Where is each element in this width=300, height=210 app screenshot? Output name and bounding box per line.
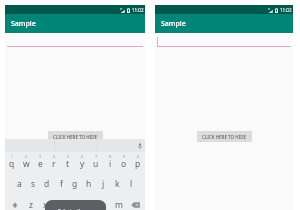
button[interactable]: 6 [75,152,89,173]
staticText: v [71,199,76,210]
staticText: g [72,178,78,190]
staticText: Select a theme [58,208,93,210]
staticText: s [31,178,36,190]
button[interactable]: 3 [33,152,47,173]
button[interactable]: Backspace [126,194,145,210]
button[interactable]: s [26,173,40,194]
staticText: CLICK HERE TO HIDE [53,134,98,140]
button[interactable]: c [52,194,66,210]
button[interactable]: j [96,173,110,194]
button[interactable]: 5 [61,152,75,173]
staticText: x [43,199,48,210]
staticText: CLICK HERE TO HIDE [202,134,247,140]
button[interactable]: Sample [155,14,293,33]
staticText: 5 [67,154,70,159]
button[interactable]: 4 [47,152,61,173]
staticText: d [44,178,50,190]
staticText: Sample [161,19,186,29]
staticText: 0 [137,154,140,159]
button[interactable]: d [40,173,54,194]
staticText: 6 [81,154,84,159]
button[interactable]: Sample [5,14,145,33]
staticText: a [17,178,22,190]
button[interactable]: g [68,173,82,194]
button[interactable]: k [110,173,124,194]
button[interactable]: CLICK HERE TO HIDE [197,131,252,142]
staticText: 1 [11,154,14,159]
staticText: 11:02 [132,7,144,13]
button[interactable]: m [111,194,126,210]
staticText: j [102,178,105,190]
staticText: l [130,178,133,190]
staticText: c [57,199,62,210]
staticText: t [66,158,70,170]
staticText: e [38,158,43,170]
staticText: q [9,158,15,170]
button[interactable]: a [12,173,26,194]
staticText: 11:02 [280,7,292,13]
staticText: 7 [95,154,98,159]
staticText: o [121,158,127,170]
staticText: 4 [53,154,56,159]
button[interactable]: f [54,173,68,194]
staticText: f [60,178,63,190]
button[interactable]: l [124,173,138,194]
button[interactable]: CLICK HERE TO HIDE [48,131,103,142]
button[interactable]: h [82,173,96,194]
staticText: h [86,178,92,190]
staticText: b [86,199,92,210]
button[interactable]: 1 [5,152,19,173]
button[interactable]: 2 [19,152,33,173]
staticText: 2 [25,154,28,159]
staticText: u [93,158,99,170]
button[interactable]: v [66,194,81,210]
button[interactable]: Voice input [138,143,142,149]
button[interactable]: x [38,194,52,210]
staticText: m [115,199,123,210]
staticText: n [101,199,107,210]
staticText: Sample [11,19,36,29]
button[interactable]: Select a theme [45,200,106,210]
button[interactable]: 9 [117,152,131,173]
staticText: z [29,199,33,210]
staticText: w [23,158,30,170]
button[interactable]: z [24,194,38,210]
staticText: 8 [109,154,112,159]
button[interactable]: n [96,194,111,210]
button[interactable]: Shift [5,194,24,210]
staticText: 3 [39,154,42,159]
staticText: 9 [123,154,126,159]
staticText: k [115,178,120,190]
button[interactable]: 0 [131,152,145,173]
staticText: y [80,158,85,170]
button[interactable]: b [81,194,96,210]
staticText: p [135,158,141,170]
staticText: i [109,158,112,170]
button[interactable]: 8 [103,152,117,173]
staticText: r [52,158,56,170]
button[interactable]: 7 [89,152,103,173]
